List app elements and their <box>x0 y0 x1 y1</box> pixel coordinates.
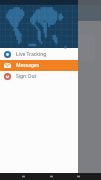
button[interactable]: Back <box>18 173 28 180</box>
staticText: Messages <box>16 62 40 69</box>
button[interactable]: Live Tracking <box>0 49 78 60</box>
button[interactable]: Sign Out <box>0 71 78 82</box>
button[interactable] <box>6 35 95 61</box>
button[interactable]: Messages <box>0 60 78 71</box>
staticText: Sign Out <box>16 73 37 80</box>
button[interactable]: Recents <box>73 173 83 180</box>
button[interactable]: Home <box>46 173 56 180</box>
staticText: Live Tracking <box>16 51 47 58</box>
